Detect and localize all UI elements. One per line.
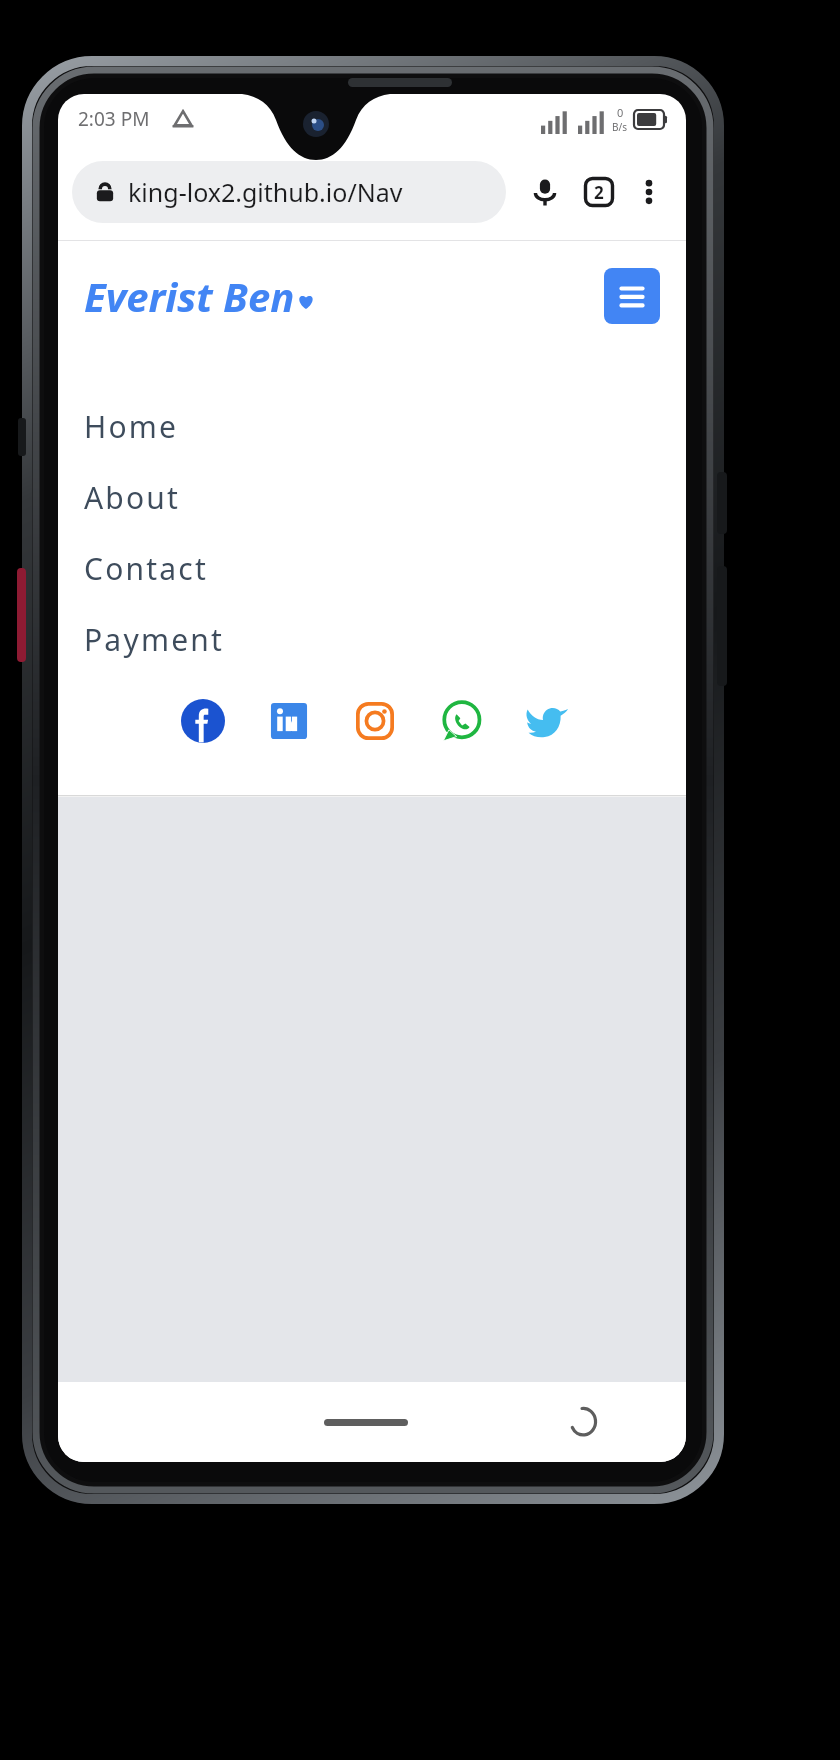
button[interactable]: king-lox2.github.io/Nav <box>72 161 506 223</box>
button[interactable]: Everist Ben <box>84 269 315 323</box>
button[interactable]: Twitter <box>519 693 575 749</box>
button[interactable]: Contact <box>58 533 686 604</box>
button[interactable]: About <box>58 462 686 533</box>
button[interactable]: Back <box>560 1398 608 1446</box>
staticText: Everist Ben <box>84 269 295 323</box>
button[interactable]: Instagram <box>347 693 403 749</box>
staticText: About <box>84 477 181 518</box>
button[interactable]: Payment <box>58 604 686 675</box>
button[interactable]: LinkedIn <box>261 693 317 749</box>
button[interactable]: Tabs <box>572 165 626 219</box>
button[interactable]: Facebook <box>175 693 231 749</box>
button[interactable]: Home <box>324 1419 408 1426</box>
staticText: 2:03 PM <box>78 106 150 132</box>
staticText: 2 <box>594 181 604 204</box>
staticText: Home <box>84 406 179 447</box>
button[interactable]: WhatsApp <box>433 693 489 749</box>
button[interactable]: Home <box>58 391 686 462</box>
staticText: B/s <box>612 120 628 134</box>
staticText: king-lox2.github.io/Nav <box>128 175 403 209</box>
button[interactable]: More options <box>626 169 672 215</box>
button[interactable]: Open menu <box>604 268 660 324</box>
staticText: Contact <box>84 548 208 589</box>
staticText: 0 <box>617 105 624 120</box>
button[interactable]: Voice search <box>518 165 572 219</box>
staticText: Payment <box>84 619 225 660</box>
